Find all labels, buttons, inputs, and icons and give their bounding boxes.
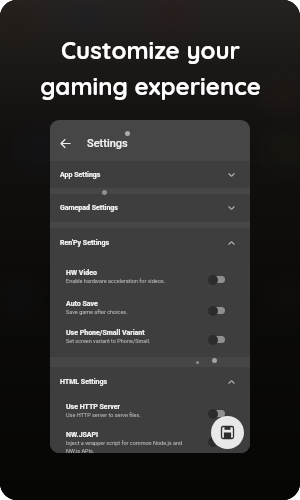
button[interactable]: Save [211,416,244,449]
staticText: NW.JSAPI [66,431,99,439]
staticText: Use HTTP server to serve files. [66,412,141,418]
staticText: Save game after choices. [66,309,128,315]
staticText: Enable hardware acceleration for videos. [66,278,166,284]
button[interactable]: Use Phone/Small Variant [50,329,250,353]
staticText: Use Phone/Small Variant [66,329,145,337]
staticText: Set screen variant to Phone/Small. [66,338,151,344]
button[interactable]: App Settings [50,161,250,188]
button[interactable]: Gamepad Settings [50,194,250,222]
staticText: Settings [87,137,128,150]
staticText: HTML Settings [60,378,108,386]
staticText: Inject a wrapper script for common Node.… [66,440,183,453]
button[interactable]: HW Video [50,269,250,293]
staticText: Auto Save [66,300,98,308]
button[interactable]: Use HTTP Server [50,403,250,427]
staticText: HW Video [66,269,97,277]
staticText: Ren'Py Settings [60,239,110,247]
button[interactable]: NW.JSAPI [50,431,250,453]
staticText: Gamepad Settings [60,204,118,212]
button[interactable]: Back [53,131,77,155]
staticText: gaming experience [40,71,261,101]
button[interactable]: HTML Settings [50,367,250,397]
button[interactable]: Ren'Py Settings [50,228,250,258]
staticText: Customize your [61,35,240,65]
staticText: Use HTTP Server [66,403,121,411]
button[interactable]: Auto Save [50,300,250,324]
staticText: App Settings [60,171,101,179]
